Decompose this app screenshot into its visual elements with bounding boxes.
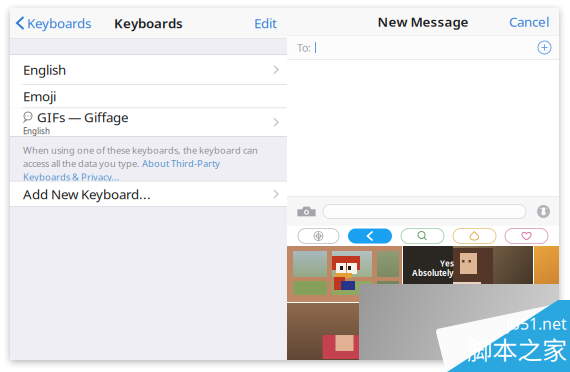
- staticText: Absolutely: [412, 268, 454, 278]
- button[interactable]: Edit: [254, 8, 287, 38]
- staticText: Cancel: [509, 13, 549, 30]
- staticText: GIFs — Giffage: [37, 108, 129, 126]
- staticText: English: [23, 126, 50, 136]
- button[interactable]: Emoji: [10, 85, 287, 108]
- staticText: Keyboards: [114, 14, 183, 32]
- staticText: Yes: [440, 258, 454, 269]
- staticText: access all the data you type.: [23, 157, 142, 170]
- staticText: 脚本之家: [467, 330, 567, 367]
- button[interactable]: Globe: [298, 228, 339, 243]
- staticText: Keyboards & Privacy...: [23, 171, 120, 183]
- button[interactable]: Camera: [287, 206, 316, 216]
- staticText: New Message: [377, 13, 468, 30]
- staticText: About Third-Party: [142, 157, 220, 170]
- button[interactable]: Add contact: [538, 41, 559, 54]
- button[interactable]: Search: [401, 228, 444, 243]
- button[interactable]: English: [10, 55, 287, 84]
- button[interactable]: Favourites: [505, 228, 548, 243]
- button[interactable]: Recents: [348, 228, 392, 243]
- button[interactable]: Keyboards: [10, 8, 97, 38]
- staticText: Emoji: [23, 87, 56, 105]
- staticText: When using one of these keyboards, the k…: [23, 144, 258, 156]
- button[interactable]: Cancel: [509, 8, 559, 35]
- staticText: English: [23, 61, 66, 78]
- button[interactable]: Digital Touch: [453, 228, 496, 243]
- button[interactable]: Send: [537, 205, 559, 218]
- staticText: To:: [297, 40, 311, 55]
- staticText: Keyboards: [27, 14, 91, 32]
- staticText: Edit: [254, 14, 277, 32]
- staticText: jb51.net: [506, 312, 567, 334]
- button[interactable]: GIFs — Giffage: [10, 108, 287, 136]
- button[interactable]: Add New Keyboard...: [10, 181, 287, 206]
- staticText: Add New Keyboard...: [23, 185, 151, 203]
